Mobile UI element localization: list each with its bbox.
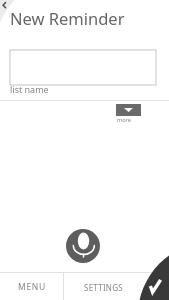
staticText: MENU (18, 281, 46, 293)
staticText: list name (10, 83, 49, 95)
button[interactable]: Back (0, 0, 12, 12)
button[interactable]: more (116, 104, 141, 116)
staticText: more (117, 116, 131, 123)
staticText: New Reminder (10, 7, 125, 29)
staticText: SETTINGS (84, 282, 123, 293)
button[interactable]: Voice input (66, 229, 100, 263)
button[interactable]: Done (0, 0, 169, 300)
button[interactable]: MENU (0, 273, 63, 300)
button[interactable]: SETTINGS (64, 273, 143, 300)
